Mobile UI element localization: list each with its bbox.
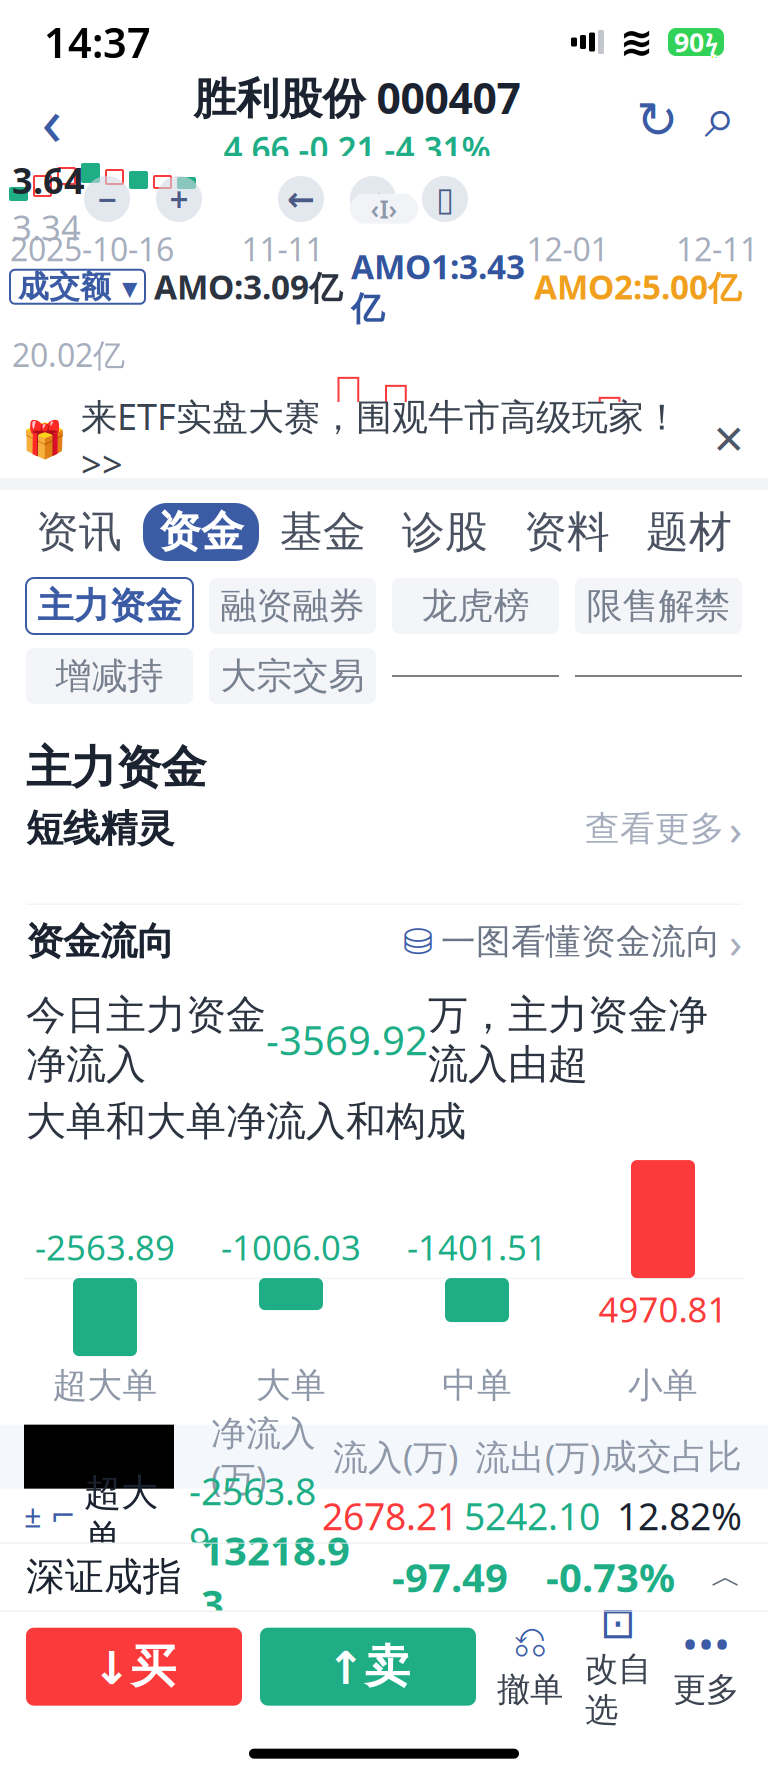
button[interactable]: 龙虎榜 xyxy=(392,578,559,634)
staticText: -1401.51 xyxy=(407,1224,547,1270)
staticText: 资金 xyxy=(158,506,244,558)
staticText: ≋ xyxy=(620,19,654,65)
button[interactable]: Chart control xyxy=(278,176,324,222)
staticText: 大单和大单净流入和构成 xyxy=(26,1097,466,1146)
staticText: 来ETF实盘大赛，围观牛市高级玩家！ >> xyxy=(81,392,680,488)
button[interactable]: Search xyxy=(688,88,752,152)
button[interactable]: ↓买 xyxy=(26,1628,242,1706)
button[interactable]: 🎁 xyxy=(0,402,768,478)
staticText: − xyxy=(97,177,116,221)
button[interactable]: ↑卖 xyxy=(260,1628,476,1706)
staticText: 成交占比 xyxy=(602,1435,742,1478)
staticText: → xyxy=(359,180,387,218)
staticText: 净流入(万) xyxy=(211,1412,316,1501)
staticText: AMO1:3.43亿 xyxy=(351,244,525,329)
button[interactable]: Refresh xyxy=(626,88,688,152)
button[interactable]: ••• xyxy=(662,1623,750,1710)
staticText: 资金流向 xyxy=(26,919,174,965)
staticText: ••• xyxy=(682,1615,730,1672)
staticText: 万，主力资金净流入由超 xyxy=(428,991,708,1089)
staticText: 超大单 xyxy=(52,1364,157,1407)
staticText: 深证成指 xyxy=(26,1553,182,1600)
button[interactable]: 大宗交易 xyxy=(209,648,376,704)
staticText: 5242.10 xyxy=(464,1491,600,1540)
button[interactable]: 资金 xyxy=(140,496,262,568)
staticText: 14:37 xyxy=(44,15,151,69)
staticText: 12-11 xyxy=(676,227,758,270)
staticText: ▯ xyxy=(436,180,454,218)
staticText: 4970.81 xyxy=(598,1286,727,1332)
button[interactable]: 资料 xyxy=(506,496,628,568)
staticText: › xyxy=(729,913,742,970)
button[interactable]: 诊股 xyxy=(384,496,506,568)
staticText: ‹I› xyxy=(370,192,397,225)
staticText: 11-11 xyxy=(242,227,324,270)
staticText: 短线精灵 xyxy=(26,806,174,852)
staticText: ϟ xyxy=(705,26,718,58)
staticText: + xyxy=(169,177,188,221)
button[interactable]: 融资融券 xyxy=(209,578,376,634)
staticText: 2025-10-16 xyxy=(10,227,174,270)
staticText: 12-01 xyxy=(526,227,608,270)
staticText: ⌐ xyxy=(50,1498,76,1533)
staticText: -0.73% xyxy=(546,1550,675,1603)
staticText: 20.02亿 xyxy=(12,333,125,376)
staticText: ± xyxy=(24,1495,42,1536)
staticText: 限售解禁 xyxy=(586,584,730,628)
staticText: 成交额 ▾ xyxy=(18,268,137,306)
button[interactable]: ⎌ xyxy=(486,1623,574,1710)
staticText: ‹ xyxy=(41,76,62,164)
staticText: 胜利股份 000407 xyxy=(193,69,520,126)
staticText: ← xyxy=(287,180,315,218)
staticText: -2563.89 xyxy=(189,1466,316,1565)
button[interactable]: Chart control xyxy=(350,176,396,222)
staticText: › xyxy=(729,800,742,857)
button[interactable]: Chart control xyxy=(84,176,130,222)
staticText: 诊股 xyxy=(402,506,488,558)
button[interactable]: 基金 xyxy=(262,496,384,568)
button[interactable]: ± xyxy=(0,1489,768,1543)
button[interactable]: 深证成指 xyxy=(0,1543,768,1611)
staticText: 基金 xyxy=(280,506,366,558)
staticText: 资料 xyxy=(524,506,610,558)
staticText: 查看更多 xyxy=(585,807,725,850)
staticText: 3.64 xyxy=(12,156,85,204)
button[interactable]: 资金流向 xyxy=(0,905,768,979)
staticText: ↻ xyxy=(636,91,678,149)
staticText: 2678.21 xyxy=(322,1491,458,1540)
button[interactable]: Chart control xyxy=(156,176,202,222)
staticText: 更多 xyxy=(673,1669,739,1710)
staticText: ↑卖 xyxy=(326,1639,409,1694)
staticText: -97.49 xyxy=(392,1550,508,1603)
staticText: 增减持 xyxy=(55,654,163,698)
button[interactable]: 短线精灵 xyxy=(0,796,768,862)
staticText: 中单 xyxy=(442,1364,512,1407)
button[interactable]: 增减持 xyxy=(26,648,193,704)
staticText: 超大单 xyxy=(84,1470,158,1561)
button[interactable]: Chart control xyxy=(422,176,468,222)
button[interactable]: Back xyxy=(16,88,88,152)
button[interactable]: 题材 xyxy=(628,496,750,568)
staticText: 90 xyxy=(674,24,704,60)
button[interactable]: 主力资金 xyxy=(26,578,193,634)
staticText: ︿ xyxy=(711,1558,742,1595)
staticText: 大单 xyxy=(256,1364,326,1407)
staticText: 13218.93 xyxy=(201,1523,350,1630)
staticText: 今日主力资金净流入 xyxy=(26,991,266,1089)
button[interactable]: 成交额 ▾ xyxy=(10,270,145,304)
staticText: 流出(万) xyxy=(475,1434,600,1480)
button[interactable]: ⊡ xyxy=(574,1603,662,1731)
button[interactable]: 资讯 xyxy=(18,496,140,568)
staticText: 撤单 xyxy=(497,1669,563,1710)
staticText: 一图看懂资金流向 xyxy=(441,920,721,963)
staticText: AMO2:5.00亿 xyxy=(534,264,741,309)
staticText: 主力资金 xyxy=(26,740,206,796)
button[interactable]: 限售解禁 xyxy=(575,578,742,634)
staticText: AMO:3.09亿 xyxy=(154,264,342,309)
staticText: ↓买 xyxy=(92,1639,175,1694)
staticText: 题材 xyxy=(646,506,732,558)
staticText: ⎌ xyxy=(513,1622,547,1664)
staticText: 🎁 xyxy=(22,419,67,460)
staticText: 融资融券 xyxy=(220,584,364,628)
staticText: -1006.03 xyxy=(221,1224,361,1270)
